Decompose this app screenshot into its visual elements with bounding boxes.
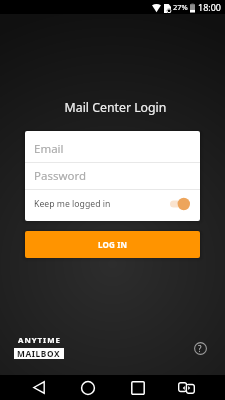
button[interactable]: Keep me logged in <box>25 190 200 221</box>
staticText: Password <box>34 168 87 184</box>
button[interactable]: ANYTIME <box>14 335 64 359</box>
staticText: 27% <box>173 2 188 12</box>
staticText: Email <box>34 141 64 157</box>
button[interactable]: Email <box>25 131 200 162</box>
button[interactable]: Password <box>25 163 200 189</box>
staticText: ANYTIME <box>18 335 61 346</box>
staticText: LOG IN <box>98 239 128 250</box>
staticText: Mail Center Login <box>3 99 225 116</box>
button[interactable]: Recent apps <box>124 375 151 400</box>
button[interactable]: Home <box>74 375 101 400</box>
button[interactable]: Help <box>189 337 211 359</box>
staticText: Keep me logged in <box>34 198 111 210</box>
button[interactable]: Back <box>25 375 52 400</box>
button[interactable]: Rotate screen <box>173 375 200 400</box>
staticText: 18:00 <box>198 1 222 13</box>
staticText: ? <box>198 343 202 354</box>
button[interactable]: LOG IN <box>25 231 200 258</box>
staticText: MAILBOX <box>17 348 61 359</box>
